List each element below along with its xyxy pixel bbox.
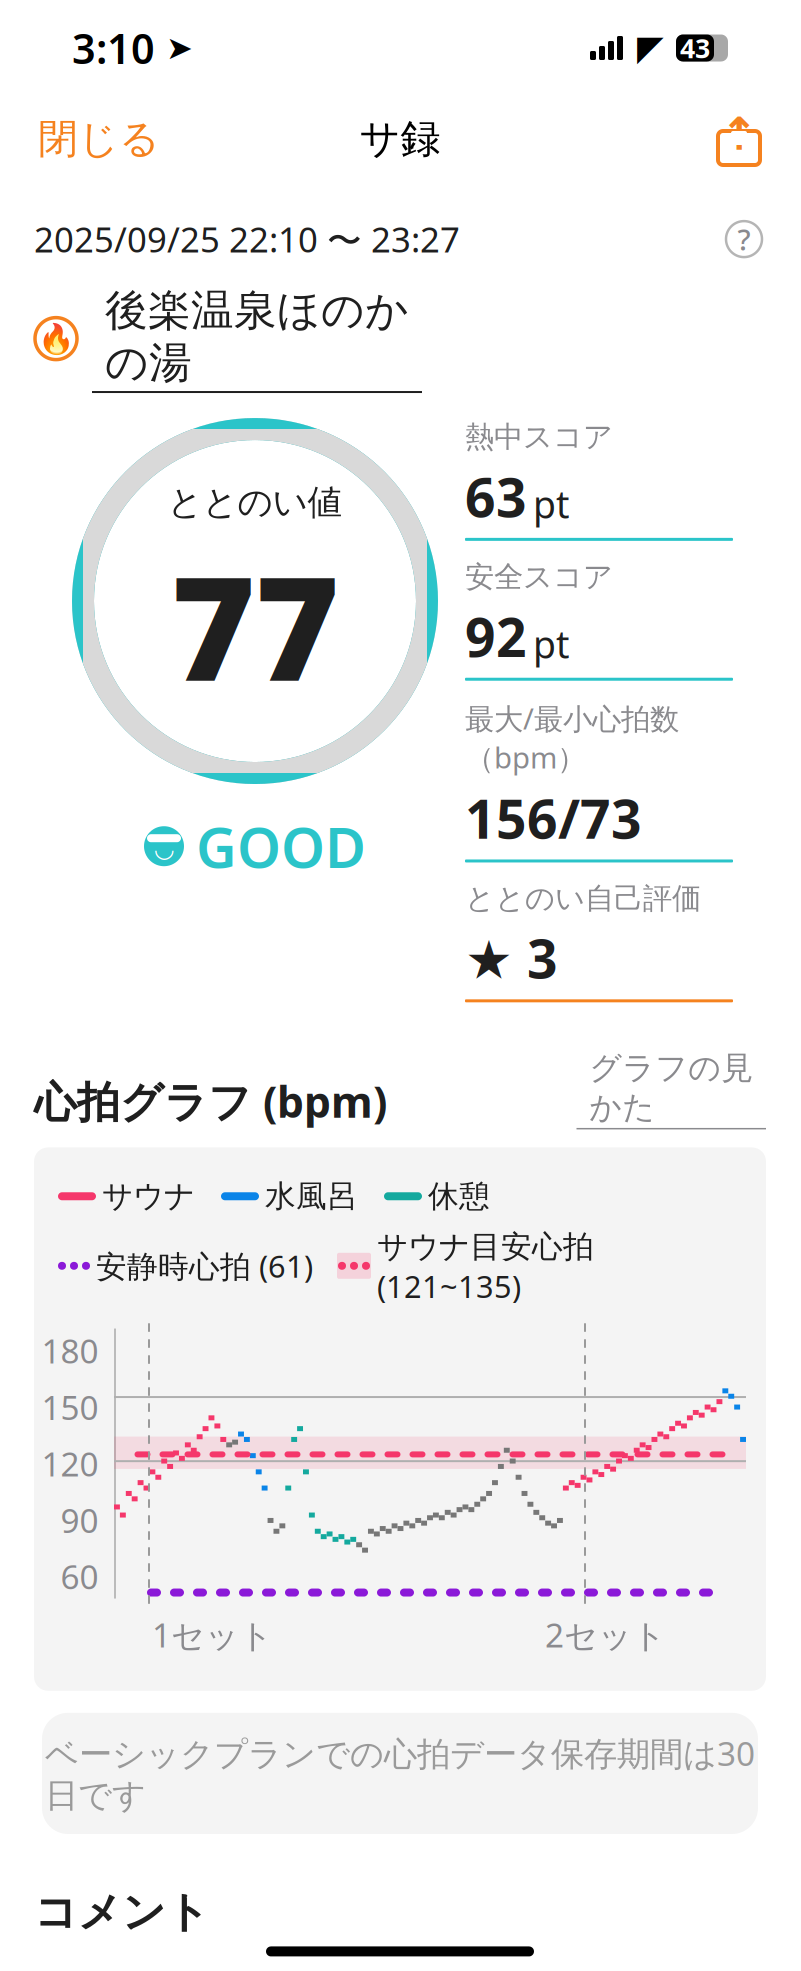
- staticText: サウナ目安心拍 (121~135): [377, 1225, 594, 1306]
- staticText: ↑: [720, 108, 758, 160]
- staticText: 60: [60, 1554, 98, 1599]
- staticText: グラフの見かた: [589, 1048, 753, 1127]
- staticText: 77: [171, 530, 339, 721]
- staticText: pt: [533, 479, 569, 529]
- staticText: ととのい自己評価: [465, 880, 701, 916]
- staticText: 63: [465, 461, 527, 532]
- staticText: 156/73: [465, 783, 642, 853]
- staticText: 安静時心拍 (61): [96, 1245, 313, 1286]
- button[interactable]: 閉じる: [34, 106, 164, 171]
- staticText: ととのい値: [167, 481, 342, 524]
- staticText: 心拍グラフ (bpm): [34, 1073, 387, 1129]
- staticText: ベーシックプランでの心拍データ保存期間は30日です: [45, 1731, 755, 1816]
- staticText: 熱中スコア: [465, 419, 613, 455]
- staticText: 2セット: [545, 1612, 666, 1657]
- button[interactable]: ヘルプ: [722, 217, 766, 261]
- staticText: コメント: [34, 1886, 210, 1938]
- staticText: 43: [680, 30, 710, 66]
- staticText: 安全スコア: [465, 559, 613, 595]
- staticText: 休憩: [428, 1177, 490, 1215]
- staticText: ★ 3: [465, 922, 558, 993]
- staticText: 最大/最小心拍数（bpm）: [465, 699, 679, 777]
- button[interactable]: グラフの見かた: [576, 1048, 766, 1129]
- staticText: 180: [41, 1328, 98, 1373]
- staticText: ?: [737, 220, 750, 259]
- staticText: サウナ: [102, 1177, 195, 1215]
- staticText: 120: [41, 1441, 98, 1486]
- staticText: ◤: [637, 28, 664, 68]
- button[interactable]: 🔥: [0, 262, 800, 393]
- staticText: 1セット: [152, 1612, 273, 1657]
- staticText: 後楽温泉ほのかの湯: [105, 284, 409, 389]
- staticText: 150: [41, 1385, 98, 1429]
- staticText: 92: [465, 601, 527, 672]
- staticText: ➤: [155, 30, 193, 66]
- staticText: サ録: [359, 114, 440, 163]
- staticText: GOOD: [196, 809, 366, 883]
- staticText: 🔥: [37, 322, 74, 355]
- staticText: 2025/09/25 22:10 〜 23:27: [34, 216, 460, 262]
- staticText: 閉じる: [38, 114, 160, 163]
- staticText: 水風呂: [265, 1177, 358, 1215]
- button[interactable]: 共有: [712, 107, 766, 171]
- staticText: 3:10: [72, 21, 155, 75]
- staticText: ◡: [155, 835, 173, 862]
- staticText: 90: [60, 1498, 98, 1542]
- staticText: pt: [533, 619, 569, 669]
